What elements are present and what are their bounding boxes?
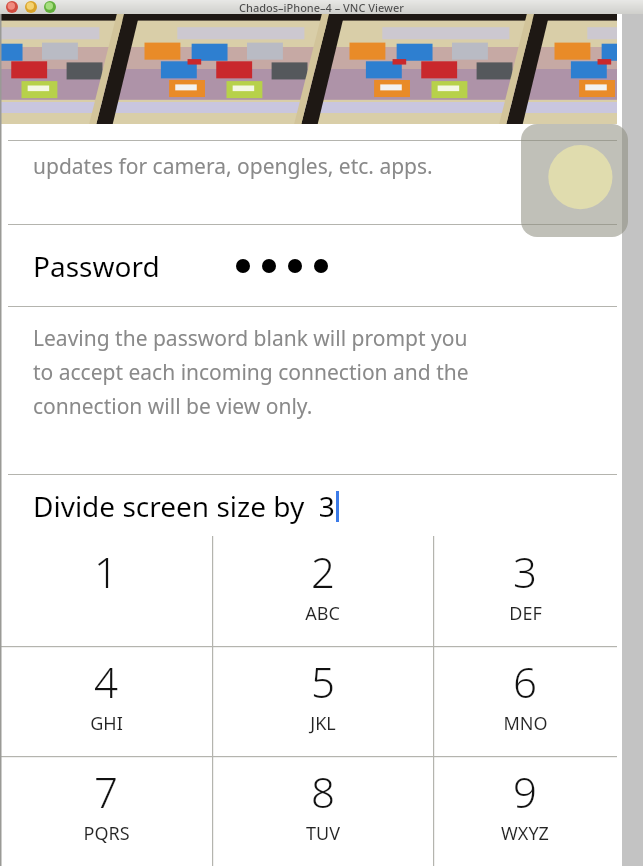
button[interactable]: Remote screen — [0, 14, 617, 124]
staticText: PQRS — [83, 821, 130, 846]
staticText: 3 — [513, 543, 537, 600]
button[interactable]: 2 — [212, 536, 433, 646]
staticText: 8 — [311, 763, 335, 820]
staticText: MNO — [503, 711, 548, 736]
button[interactable]: 8 — [212, 756, 433, 866]
staticText: 4 — [94, 653, 118, 710]
staticText: GHI — [90, 711, 123, 736]
button[interactable]: Zoom loupe — [521, 124, 628, 237]
button[interactable]: 6 — [433, 646, 617, 756]
button[interactable]: 1 — [0, 536, 212, 646]
button[interactable]: Close — [6, 1, 18, 13]
staticText: 7 — [94, 763, 118, 820]
button[interactable]: Zoom — [44, 1, 56, 13]
button[interactable]: 4 — [0, 646, 212, 756]
staticText: 5 — [311, 653, 335, 710]
button[interactable]: Divide screen size by 3 — [0, 475, 617, 536]
button[interactable]: Minimize — [25, 1, 37, 13]
staticText: ABC — [305, 601, 340, 626]
staticText: connection will be view only. — [33, 392, 313, 421]
staticText: 9 — [513, 763, 537, 820]
staticText: DEF — [509, 601, 542, 626]
staticText: TUV — [306, 821, 340, 846]
button[interactable]: Scroll — [622, 14, 643, 866]
button[interactable]: 3 — [433, 536, 617, 646]
staticText: JKL — [310, 711, 336, 736]
button[interactable]: 9 — [433, 756, 617, 866]
staticText: 1 — [94, 543, 118, 600]
staticText: 6 — [513, 653, 537, 710]
staticText: Divide screen size by 3 — [33, 487, 335, 525]
staticText: WXYZ — [501, 821, 549, 846]
staticText: updates for camera, opengles, etc. apps. — [33, 152, 433, 181]
staticText: Chados–iPhone–4 – VNC Viewer — [239, 0, 404, 14]
staticText: 2 — [311, 543, 335, 600]
button[interactable]: Password — [0, 225, 617, 307]
staticText: to accept each incoming connection and t… — [33, 358, 469, 387]
button[interactable]: 5 — [212, 646, 433, 756]
button[interactable]: 7 — [0, 756, 212, 866]
staticText: Password — [33, 247, 160, 285]
staticText: Leaving the password blank will prompt y… — [33, 324, 468, 353]
